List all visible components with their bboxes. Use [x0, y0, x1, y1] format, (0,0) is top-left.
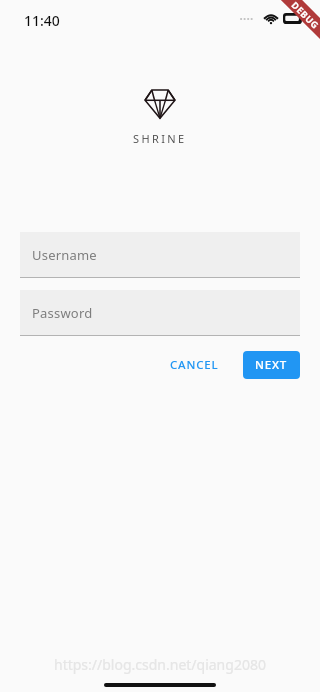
- staticText: 11:40: [24, 11, 60, 30]
- staticText: SHRINE: [133, 131, 187, 146]
- staticText: CANCEL: [170, 357, 219, 373]
- staticText: NEXT: [255, 357, 288, 373]
- staticText: DEBUG: [289, 0, 320, 31]
- staticText: Username: [32, 246, 97, 264]
- button[interactable]: Password: [20, 290, 300, 336]
- button[interactable]: NEXT: [243, 351, 300, 379]
- staticText: https://blog.csdn.net/qiang2080: [54, 655, 266, 674]
- staticText: Password: [32, 304, 93, 322]
- button[interactable]: Username: [20, 232, 300, 278]
- button[interactable]: CANCEL: [158, 349, 231, 381]
